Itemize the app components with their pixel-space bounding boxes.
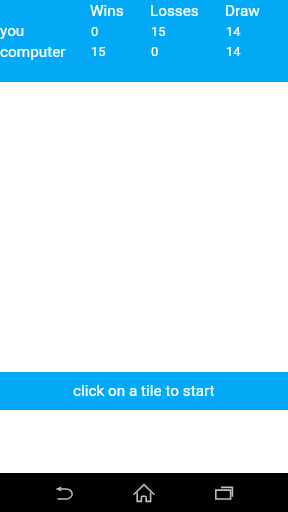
staticText: 15: [151, 24, 166, 39]
staticText: Losses: [150, 2, 199, 20]
button[interactable]: Home: [112, 473, 176, 512]
staticText: click on a tile to start: [73, 382, 215, 400]
staticText: 15: [91, 44, 106, 59]
staticText: Wins: [90, 2, 124, 20]
staticText: 14: [226, 24, 241, 39]
button[interactable]: Recent apps: [192, 473, 256, 512]
button[interactable]: click on a tile to start: [0, 372, 288, 410]
staticText: Draw: [225, 2, 260, 20]
staticText: 14: [226, 44, 241, 59]
staticText: you: [0, 22, 25, 40]
staticText: 0: [91, 24, 99, 39]
button[interactable]: Back: [32, 473, 96, 512]
staticText: 0: [151, 44, 159, 59]
staticText: computer: [0, 43, 66, 61]
